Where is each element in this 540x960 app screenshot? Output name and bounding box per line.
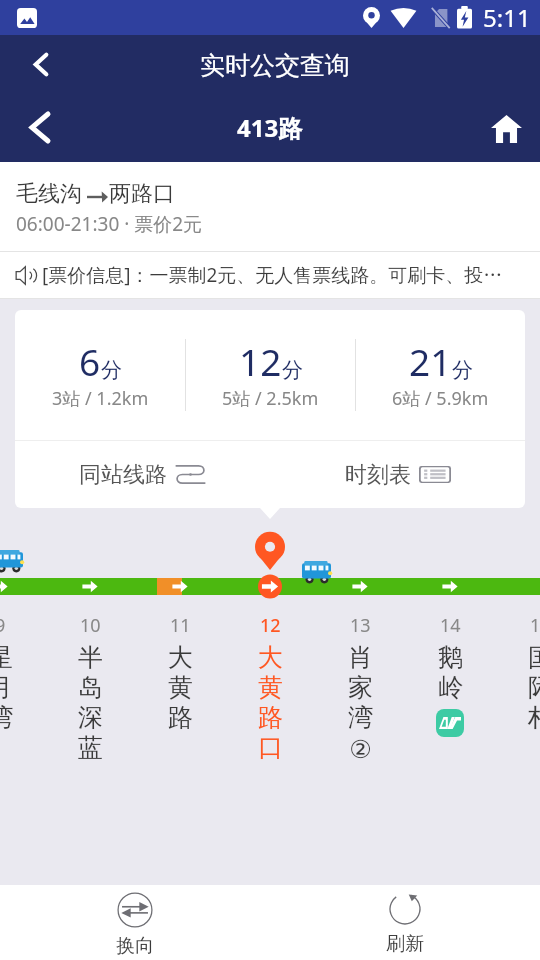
button[interactable]: Metro transfer <box>436 709 464 737</box>
staticText: 时刻表 <box>345 461 411 489</box>
button[interactable]: 时刻表 <box>270 441 525 508</box>
button[interactable]: 6 <box>15 310 185 440</box>
staticText: 12 <box>260 613 281 638</box>
button[interactable]: 15 <box>495 613 540 734</box>
staticText: 毛线沟 <box>16 180 82 208</box>
button[interactable]: 刷新 <box>270 885 540 960</box>
staticText: 6站 / 5.9km <box>392 386 489 411</box>
staticText: 14 <box>440 613 461 638</box>
staticText: 肖 家 湾 ② <box>348 642 373 764</box>
staticText: [票价信息]：一票制2元、无人售票线路。可刷卡、投币，使用重庆公交一卡通。 <box>42 262 516 288</box>
staticText: 12 <box>239 336 282 386</box>
staticText: 半 岛 深 蓝 <box>78 642 103 764</box>
staticText: 同站线路 <box>79 461 167 489</box>
staticText: 大 黄 路 <box>168 642 193 734</box>
button[interactable]: 13 <box>315 613 405 764</box>
staticText: 星 月 湾 <box>0 642 13 734</box>
staticText: 刷新 <box>386 932 424 956</box>
button[interactable]: 9 <box>0 613 45 734</box>
staticText: 11 <box>170 613 191 638</box>
staticText: 21 <box>409 336 452 386</box>
button[interactable]: 11 <box>135 613 225 734</box>
staticText: 分 <box>452 357 473 383</box>
staticText: 换向 <box>116 934 154 958</box>
button[interactable]: Back <box>0 92 70 162</box>
staticText: 鹅 岭 <box>438 642 463 704</box>
staticText: 分 <box>101 357 122 383</box>
staticText: 3站 / 1.2km <box>52 386 149 411</box>
staticText: 分 <box>282 357 303 383</box>
button[interactable]: [票价信息]：一票制2元、无人售票线路。可刷卡、投币，使用重庆公交一卡通。 <box>0 252 540 298</box>
staticText: 6 <box>79 336 101 386</box>
button[interactable]: 10 <box>45 613 135 764</box>
staticText: 13 <box>350 613 371 638</box>
button[interactable]: 同站线路 <box>15 441 270 508</box>
button[interactable]: 14 <box>405 613 495 737</box>
button[interactable]: 12 <box>186 310 355 440</box>
staticText: 06:00-21:30 · 票价2元 <box>16 211 203 237</box>
button[interactable]: 12 <box>225 613 315 764</box>
button[interactable]: 换向 <box>0 885 270 960</box>
staticText: 10 <box>80 613 101 638</box>
button[interactable]: 21 <box>356 310 525 440</box>
staticText: 大 黄 路 口 <box>258 642 283 764</box>
button[interactable]: Home <box>472 92 540 162</box>
staticText: 9 <box>0 613 6 638</box>
staticText: 15 <box>530 613 540 638</box>
staticText: 5站 / 2.5km <box>222 386 319 411</box>
staticText: 5:11 <box>483 1 531 34</box>
staticText: 413路 <box>237 111 303 144</box>
staticText: 两路口 <box>109 180 175 208</box>
staticText: 实时公交查询 <box>200 50 350 81</box>
button[interactable]: Back <box>0 35 70 92</box>
staticText: 国 际 村 <box>528 642 540 734</box>
